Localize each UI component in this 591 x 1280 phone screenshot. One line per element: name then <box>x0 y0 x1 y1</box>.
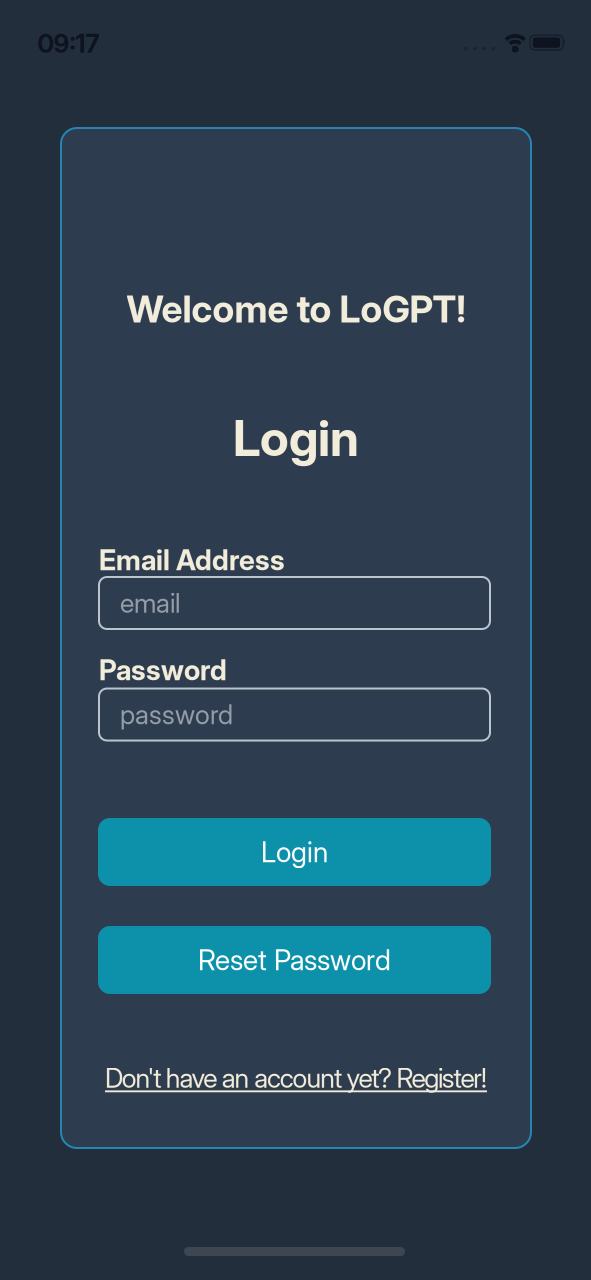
staticText: Login <box>233 409 359 467</box>
button[interactable]: Don't have an account yet? Register! <box>105 1062 487 1094</box>
staticText: Welcome to LoGPT! <box>126 287 465 331</box>
staticText: Don't have an account yet? Register! <box>105 1062 487 1094</box>
button[interactable]: Login <box>98 818 491 886</box>
staticText: email <box>120 587 180 619</box>
staticText: Email Address <box>99 543 285 576</box>
staticText: Reset Password <box>198 943 391 976</box>
staticText: password <box>120 699 233 730</box>
button[interactable]: password <box>99 688 490 740</box>
staticText: 09:17 <box>37 29 99 58</box>
button[interactable]: email <box>99 577 490 629</box>
button[interactable]: Reset Password <box>98 926 491 994</box>
staticText: Login <box>261 835 328 868</box>
staticText: Password <box>99 653 227 686</box>
